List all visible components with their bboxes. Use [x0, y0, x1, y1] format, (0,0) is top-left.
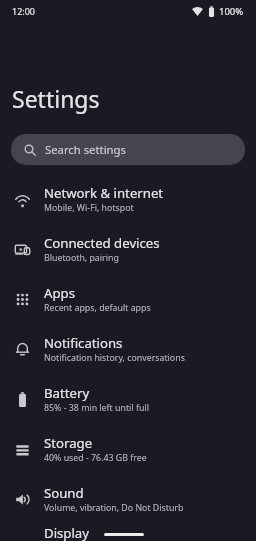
staticText: Apps: [44, 284, 75, 302]
staticText: Network & internet: [44, 184, 164, 202]
staticText: Recent apps, default apps: [44, 302, 151, 314]
button[interactable]: Sound: [0, 474, 256, 524]
staticText: Notifications: [44, 334, 123, 352]
button[interactable]: Network & internet: [0, 174, 256, 224]
button[interactable]: Notifications: [0, 324, 256, 374]
staticText: Battery: [44, 384, 90, 402]
staticText: 12:00: [12, 5, 36, 17]
staticText: Search settings: [45, 142, 126, 157]
button[interactable]: Apps: [0, 274, 256, 324]
staticText: 85% - 38 min left until full: [44, 402, 149, 414]
staticText: Mobile, Wi-Fi, hotspot: [44, 202, 134, 214]
staticText: Connected devices: [44, 234, 160, 252]
button[interactable]: Storage: [0, 424, 256, 474]
staticText: Sound: [44, 484, 84, 502]
staticText: 100%: [219, 5, 244, 18]
staticText: 40% used - 76.43 GB free: [44, 452, 147, 464]
staticText: Volume, vibration, Do Not Disturb: [44, 502, 184, 514]
button[interactable]: Search settings: [11, 134, 245, 165]
staticText: Bluetooth, pairing: [44, 252, 119, 264]
button[interactable]: Display: [0, 524, 256, 541]
staticText: Display: [44, 524, 89, 541]
staticText: Storage: [44, 434, 93, 452]
button[interactable]: Connected devices: [0, 224, 256, 274]
button[interactable]: Battery: [0, 374, 256, 424]
staticText: Notification history, conversations: [44, 352, 185, 364]
staticText: Settings: [12, 83, 100, 114]
